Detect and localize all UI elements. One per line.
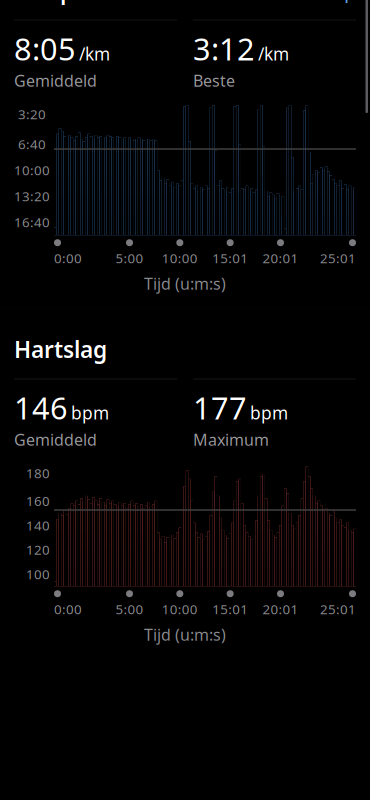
staticText: 0:00 [54, 249, 82, 267]
staticText: Beste [193, 70, 235, 91]
staticText: 177 [193, 387, 247, 428]
staticText: 100 [26, 565, 50, 583]
button[interactable]: Tempo [14, 0, 113, 5]
staticText: Gemiddeld [14, 429, 97, 450]
staticText: 120 [26, 541, 50, 558]
staticText: 160 [26, 492, 50, 510]
staticText: /km [79, 42, 110, 65]
staticText: Tijd (u:m:s) [144, 273, 226, 294]
staticText: 20:01 [262, 249, 298, 267]
staticText: 3:20 [18, 105, 46, 123]
staticText: 16:40 [14, 213, 50, 231]
staticText: 5:00 [115, 600, 143, 618]
staticText: 8:05 [14, 28, 76, 69]
staticText: 0:00 [54, 600, 82, 618]
staticText: Tempo [14, 0, 88, 5]
staticText: Hartslag [14, 334, 107, 364]
staticText: Maximum [193, 429, 269, 450]
staticText: 180 [26, 464, 50, 482]
staticText: 140 [26, 516, 50, 534]
staticText: 15:01 [212, 249, 248, 267]
staticText: Gemiddeld [14, 70, 97, 91]
staticText: Help [313, 0, 356, 3]
staticText: /km [258, 42, 289, 65]
staticText: bpm [71, 401, 109, 424]
staticText: 5:00 [115, 249, 143, 267]
button[interactable]: Help [313, 0, 356, 3]
staticText: 146 [14, 387, 68, 428]
staticText: Tijd (u:m:s) [144, 624, 226, 645]
staticText: 15:01 [212, 600, 248, 618]
staticText: 20:01 [262, 600, 298, 618]
staticText: 6:40 [18, 135, 46, 153]
staticText: 10:00 [162, 600, 198, 618]
staticText: 25:01 [320, 600, 356, 618]
staticText: 13:20 [14, 187, 50, 205]
staticText: bpm [250, 401, 288, 424]
staticText: 3:12 [193, 28, 255, 69]
staticText: 25:01 [320, 249, 356, 267]
staticText: 10:00 [14, 161, 50, 179]
staticText: 10:00 [162, 249, 198, 267]
